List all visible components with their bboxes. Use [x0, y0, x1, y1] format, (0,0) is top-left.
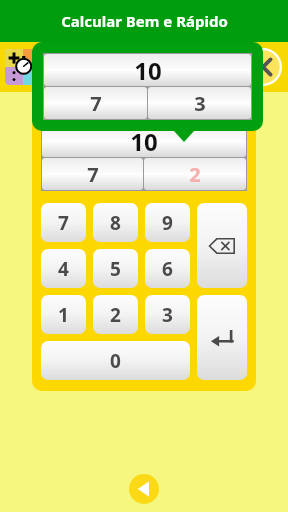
staticText: 6 [162, 256, 173, 282]
staticText: 5 [110, 256, 121, 282]
button[interactable]: 4 [41, 249, 86, 288]
button[interactable]: 10 [44, 54, 251, 86]
staticText: 8 [110, 210, 121, 236]
staticText: 10 [130, 125, 158, 157]
button[interactable]: 6 [145, 249, 190, 288]
staticText: 3 [194, 90, 206, 117]
button[interactable]: 10 [42, 125, 246, 157]
staticText: 3 [162, 302, 173, 328]
button[interactable]: 7 [42, 158, 143, 190]
button[interactable]: 2 [93, 295, 138, 334]
staticText: 2 [110, 302, 121, 328]
staticText: 4 [58, 256, 69, 282]
button[interactable]: 7 [41, 203, 86, 242]
staticText: 0 [110, 348, 121, 374]
staticText: Calcular Bem e Rápido [61, 11, 228, 31]
button[interactable]: 3 [148, 87, 251, 119]
button[interactable]: 0 [41, 341, 190, 380]
staticText: 10 [134, 54, 162, 86]
button[interactable]: 7 [44, 87, 147, 119]
button[interactable]: Back [129, 474, 159, 504]
button[interactable]: Backspace [197, 203, 247, 288]
button[interactable]: 3 [145, 295, 190, 334]
button[interactable]: Close [244, 48, 282, 86]
button[interactable]: Enter [197, 295, 247, 380]
staticText: 7 [90, 90, 102, 117]
staticText: 9 [162, 210, 173, 236]
staticText: 7 [58, 210, 69, 236]
button[interactable]: App icon [5, 49, 41, 85]
button[interactable]: 1 [41, 295, 86, 334]
button[interactable]: 8 [93, 203, 138, 242]
button[interactable]: 5 [93, 249, 138, 288]
staticText: 1 [58, 302, 69, 328]
staticText: 2 [189, 161, 201, 188]
staticText: 7 [87, 161, 99, 188]
button[interactable]: 9 [145, 203, 190, 242]
button[interactable]: 2 [144, 158, 246, 190]
